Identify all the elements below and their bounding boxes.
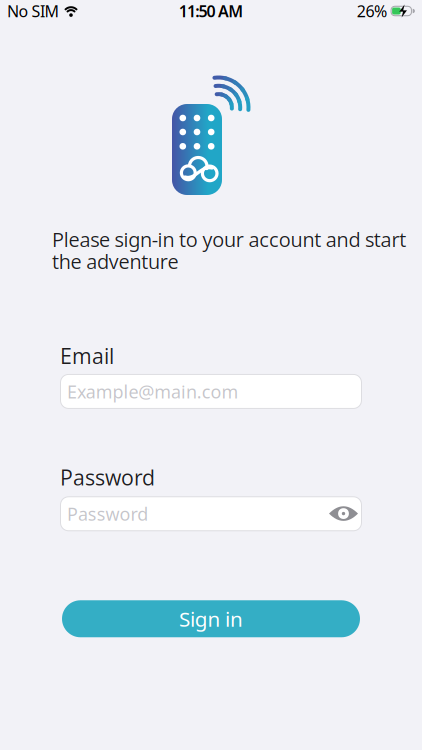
button[interactable] (329, 496, 358, 531)
staticText: Sign in (179, 605, 243, 632)
staticText: Password (67, 502, 148, 526)
button[interactable]: Sign in (0, 600, 422, 637)
staticText: 26% (357, 0, 387, 22)
staticText: Example@main.com (67, 379, 238, 403)
staticText: Please sign-in to your account and start… (52, 226, 406, 275)
button[interactable]: Example@main.com (0, 374, 422, 409)
staticText: 11:50 AM (179, 0, 243, 22)
button[interactable]: Password (0, 496, 422, 531)
staticText: No SIM (7, 0, 59, 22)
staticText: Password (60, 463, 155, 491)
staticText: Email (60, 342, 114, 370)
